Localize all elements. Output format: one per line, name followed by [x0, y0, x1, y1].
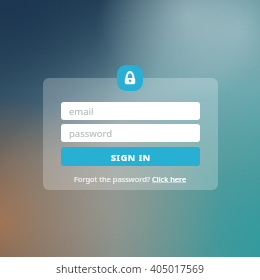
button[interactable]: Forgot the password?: [72, 173, 189, 185]
button[interactable]: password: [61, 124, 200, 142]
staticText: password: [69, 127, 113, 140]
staticText: Forgot the password?: [74, 174, 152, 184]
staticText: SIGN IN: [111, 151, 151, 163]
staticText: email: [69, 105, 94, 118]
button[interactable]: Secure login: [117, 65, 143, 91]
button[interactable]: email: [61, 102, 200, 120]
staticText: shutterstock.com · 405017569: [56, 262, 205, 276]
staticText: Click here: [152, 174, 187, 184]
button[interactable]: SIGN IN: [61, 147, 200, 166]
